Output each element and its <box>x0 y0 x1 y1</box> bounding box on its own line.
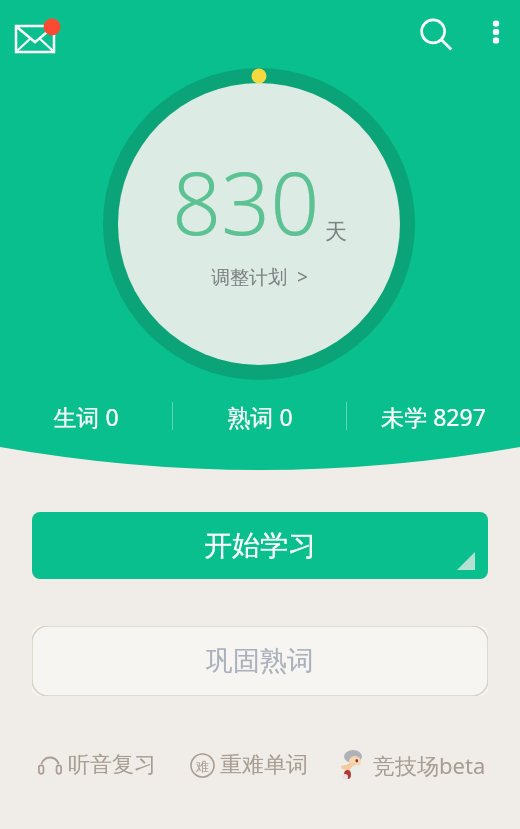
staticText: 830 <box>172 143 320 260</box>
staticText: 重难单词 <box>220 751 308 779</box>
staticText: 生词 0 <box>53 401 119 432</box>
button[interactable]: 熟词 0 <box>173 397 346 435</box>
staticText: 竞技场beta <box>373 750 486 780</box>
button[interactable]: 未学 8297 <box>347 397 520 435</box>
button[interactable]: 巩固熟词 <box>32 626 488 696</box>
staticText: 难 <box>196 758 209 774</box>
staticText: 听音复习 <box>68 751 156 779</box>
button[interactable]: Messages <box>4 6 64 66</box>
staticText: 熟词 0 <box>227 401 293 432</box>
button[interactable]: 听音复习 <box>32 751 161 779</box>
button[interactable]: Search <box>408 7 464 63</box>
button[interactable]: More options <box>472 8 520 56</box>
staticText: 巩固熟词 <box>206 644 314 678</box>
staticText: 调整计划 > <box>211 264 308 290</box>
button[interactable]: 竞技场beta <box>333 748 489 782</box>
staticText: 开始学习 <box>204 528 316 563</box>
staticText: 未学 8297 <box>381 401 486 432</box>
button[interactable]: 开始学习 <box>32 512 488 579</box>
button[interactable]: 难 <box>185 751 313 779</box>
button[interactable]: 830 <box>103 68 415 380</box>
staticText: 天 <box>325 218 347 246</box>
button[interactable]: 生词 0 <box>0 397 172 435</box>
